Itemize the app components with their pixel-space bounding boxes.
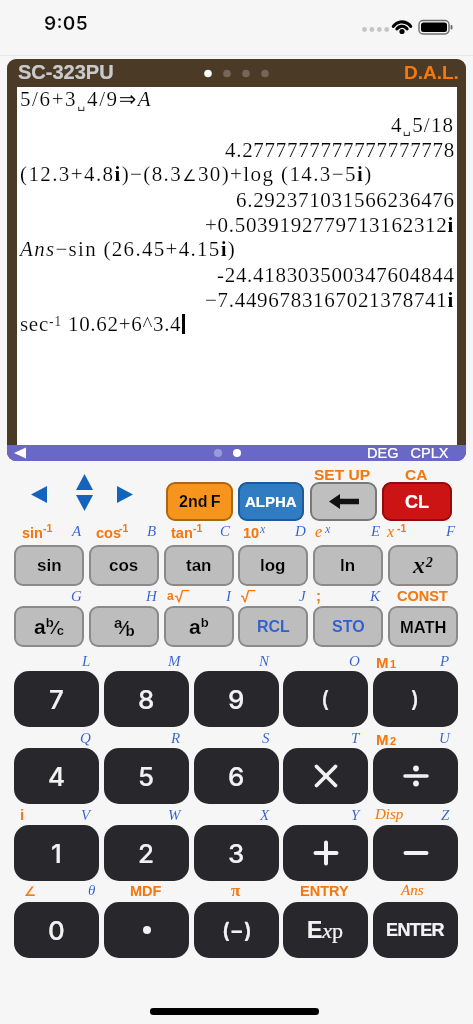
button[interactable]: (: [283, 671, 368, 727]
staticText: X: [260, 807, 270, 824]
button[interactable]: 4: [14, 748, 99, 804]
staticText: W: [168, 807, 181, 824]
staticText: MDF: [130, 883, 162, 899]
button[interactable]: [76, 495, 93, 511]
staticText: K: [370, 588, 381, 605]
staticText: tan: [171, 525, 193, 541]
button[interactable]: 2: [104, 825, 189, 881]
button[interactable]: [76, 474, 93, 490]
staticText: √‾: [241, 588, 255, 605]
staticText: 5/6+3␣4/9⇒A: [20, 87, 153, 111]
staticText: 3: [228, 838, 245, 869]
button[interactable]: x²: [388, 545, 458, 586]
staticText: G: [71, 588, 82, 605]
staticText: tan: [186, 556, 212, 575]
button[interactable]: ALPHA: [238, 482, 304, 521]
button[interactable]: ): [373, 671, 458, 727]
staticText: N: [259, 653, 270, 670]
staticText: π: [231, 881, 241, 900]
staticText: sin: [37, 556, 62, 575]
button[interactable]: cos: [89, 545, 159, 586]
staticText: C: [220, 523, 231, 540]
button[interactable]: Exp: [283, 902, 368, 958]
staticText: Exp: [307, 917, 344, 943]
button[interactable]: (−): [194, 902, 279, 958]
staticText: ): [411, 686, 420, 713]
staticText: B: [147, 523, 157, 540]
staticText: ALPHA: [245, 493, 297, 510]
staticText: cos: [109, 556, 139, 575]
staticText: DEG CPLX: [367, 445, 449, 461]
staticText: 6.292371031566236476: [236, 188, 455, 211]
button[interactable]: [104, 902, 189, 958]
button[interactable]: 5: [104, 748, 189, 804]
button[interactable]: log: [238, 545, 308, 586]
button[interactable]: 9: [194, 671, 279, 727]
staticText: x²: [413, 552, 433, 579]
button[interactable]: sin: [14, 545, 84, 586]
staticText: 4.2777777777777777778: [225, 138, 455, 161]
staticText: sin: [22, 525, 43, 541]
staticText: J: [299, 588, 306, 605]
staticText: -1: [119, 522, 129, 534]
staticText: SET UP: [314, 466, 370, 483]
staticText: Q: [80, 730, 91, 747]
staticText: SC-323PU: [18, 61, 114, 83]
button[interactable]: [31, 486, 47, 503]
button[interactable]: 3: [194, 825, 279, 881]
staticText: STO: [332, 618, 365, 636]
button[interactable]: 2nd F: [166, 482, 233, 521]
button[interactable]: 8: [104, 671, 189, 727]
staticText: Disp: [375, 806, 404, 823]
button[interactable]: MATH: [388, 606, 458, 647]
button[interactable]: tan: [164, 545, 234, 586]
staticText: D: [295, 523, 306, 540]
staticText: 9:05: [44, 12, 88, 35]
staticText: CA: [405, 466, 428, 483]
staticText: Ans−sin (26.45+4.15i): [20, 237, 237, 260]
staticText: ENTER: [386, 920, 445, 940]
staticText: CONST: [397, 588, 448, 604]
button[interactable]: 0: [14, 902, 99, 958]
staticText: (12.3+4.8i)−(8.3∠30)+log (14.3−5i): [20, 162, 373, 185]
staticText: ln: [340, 556, 356, 575]
button[interactable]: ln: [313, 545, 383, 586]
staticText: ;: [316, 587, 321, 604]
staticText: Ans: [401, 882, 424, 899]
button[interactable]: [373, 748, 458, 804]
staticText: H: [146, 588, 157, 605]
staticText: 4: [48, 761, 66, 792]
staticText: x: [260, 522, 266, 535]
button[interactable]: STO: [313, 606, 383, 647]
staticText: a⁄b: [114, 614, 135, 639]
button[interactable]: 1: [14, 825, 99, 881]
staticText: -1: [193, 522, 203, 534]
button[interactable]: ENTER: [373, 902, 458, 958]
staticText: ab⁄c: [34, 615, 64, 638]
staticText: L: [82, 653, 91, 670]
button[interactable]: ab⁄c: [14, 606, 84, 647]
button[interactable]: [283, 748, 368, 804]
staticText: Z: [441, 807, 450, 824]
button[interactable]: [310, 482, 377, 521]
staticText: x: [387, 523, 395, 541]
staticText: O: [349, 653, 360, 670]
staticText: 9: [228, 684, 245, 715]
staticText: x: [325, 522, 331, 535]
button[interactable]: 6: [194, 748, 279, 804]
button[interactable]: [283, 825, 368, 881]
button[interactable]: 7: [14, 671, 99, 727]
staticText: ENTRY: [300, 883, 349, 899]
staticText: −7.4496783167021378741i: [205, 288, 455, 311]
button[interactable]: [373, 825, 458, 881]
button[interactable]: a⁄b: [89, 606, 159, 647]
button[interactable]: ab: [164, 606, 234, 647]
staticText: log: [260, 556, 286, 575]
staticText: S: [262, 730, 270, 747]
staticText: M: [376, 731, 389, 748]
button[interactable]: [117, 486, 133, 503]
staticText: 6: [228, 761, 245, 792]
staticText: V: [81, 807, 91, 824]
button[interactable]: CL: [382, 482, 452, 521]
button[interactable]: RCL: [238, 606, 308, 647]
